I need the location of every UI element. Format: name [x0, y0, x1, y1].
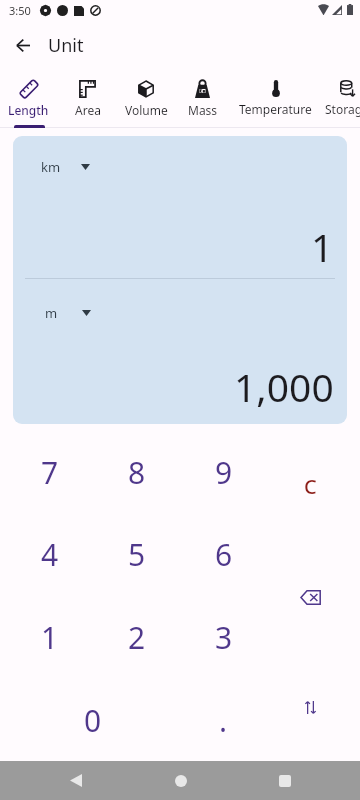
button[interactable]: 5: [93, 513, 180, 596]
button[interactable]: .: [180, 679, 267, 762]
staticText: Volume: [125, 102, 168, 118]
staticText: 1,000: [234, 360, 334, 413]
staticText: C: [304, 473, 317, 500]
button[interactable]: Swap units: [267, 652, 354, 762]
button[interactable]: 9: [180, 431, 267, 513]
staticText: .: [219, 700, 228, 741]
staticText: 7: [41, 452, 59, 493]
button[interactable]: Home: [152, 761, 209, 800]
staticText: 4: [41, 534, 59, 575]
button[interactable]: 3: [180, 596, 267, 679]
staticText: 2: [128, 617, 146, 658]
button[interactable]: Back: [4, 26, 42, 64]
button[interactable]: km: [41, 158, 90, 176]
staticText: 0: [84, 700, 102, 741]
staticText: Unit: [48, 33, 84, 58]
staticText: 9: [215, 452, 233, 493]
staticText: Storage: [325, 101, 360, 117]
button[interactable]: 6: [180, 513, 267, 596]
button[interactable]: 1: [6, 596, 93, 679]
staticText: Area: [75, 102, 101, 118]
button[interactable]: Recents: [256, 761, 313, 800]
button[interactable]: 8: [93, 431, 180, 513]
staticText: 3:50: [9, 3, 31, 18]
button[interactable]: Temperature: [231, 70, 320, 128]
button[interactable]: C: [267, 431, 354, 542]
button[interactable]: 0: [6, 679, 180, 762]
staticText: 1: [41, 617, 59, 658]
button[interactable]: 2: [93, 596, 180, 679]
staticText: Mass: [188, 102, 218, 118]
staticText: Length: [8, 102, 49, 118]
button[interactable]: m: [45, 304, 91, 322]
staticText: 6: [215, 534, 233, 575]
staticText: 3: [215, 617, 233, 658]
button[interactable]: Back: [47, 761, 104, 800]
button[interactable]: Mass: [174, 70, 231, 128]
button[interactable]: Length: [0, 70, 57, 128]
button[interactable]: Storage: [320, 70, 360, 128]
button[interactable]: 4: [6, 513, 93, 596]
staticText: 5: [128, 534, 146, 575]
staticText: m: [45, 304, 58, 322]
staticText: km: [41, 158, 61, 176]
staticText: Temperature: [239, 101, 312, 117]
staticText: 8: [128, 452, 146, 493]
button[interactable]: Volume: [118, 70, 174, 128]
button[interactable]: 7: [6, 431, 93, 513]
button[interactable]: Delete: [267, 542, 354, 652]
button[interactable]: Area: [57, 70, 118, 128]
staticText: 1: [311, 220, 334, 273]
